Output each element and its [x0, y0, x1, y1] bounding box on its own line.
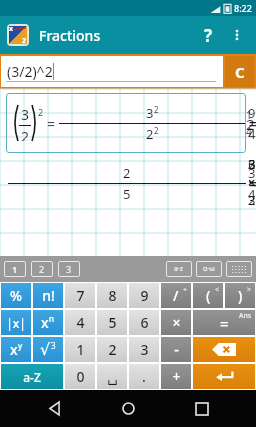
staticText: 4	[76, 313, 85, 332]
button[interactable]: x	[1, 337, 31, 362]
button[interactable]: (3/2)^2	[1, 56, 223, 87]
button[interactable]: )	[225, 283, 255, 308]
staticText: y	[18, 340, 23, 351]
button[interactable]: /	[161, 283, 191, 308]
staticText: x	[9, 24, 14, 34]
staticText: 2	[154, 125, 159, 136]
staticText: =	[220, 313, 229, 333]
button[interactable]: 3	[129, 337, 159, 362]
button[interactable]: Recent apps	[182, 390, 222, 427]
staticText: 7	[76, 286, 85, 305]
button[interactable]: -	[161, 337, 191, 362]
button[interactable]: 1	[65, 337, 95, 362]
button[interactable]: x	[33, 310, 63, 335]
staticText: ÷	[183, 285, 188, 295]
button[interactable]: 3	[58, 261, 80, 277]
staticText: =	[47, 114, 56, 133]
button[interactable]: 3	[6, 93, 246, 153]
staticText: 6	[140, 313, 149, 332]
button[interactable]: 6	[129, 310, 159, 335]
button[interactable]: a-Z	[1, 364, 63, 389]
staticText: 8:22	[234, 2, 252, 14]
button[interactable]: Enter	[193, 364, 255, 389]
staticText: 0	[76, 367, 85, 386]
button[interactable]: Keyboard	[226, 261, 252, 277]
staticText: 2	[38, 106, 44, 118]
button[interactable]: 8	[97, 283, 127, 308]
staticText: >	[247, 285, 252, 295]
staticText: 3	[21, 105, 30, 124]
staticText: +	[172, 367, 181, 386]
staticText: a·z	[174, 264, 184, 274]
button[interactable]: n!	[33, 283, 63, 308]
staticText: ⌴	[107, 364, 118, 389]
staticText: 2	[108, 340, 117, 359]
staticText: 8	[108, 286, 117, 305]
button[interactable]: |x|	[1, 310, 31, 335]
staticText: 3	[146, 104, 154, 122]
button[interactable]: 0	[65, 364, 95, 389]
staticText: Ans	[239, 311, 252, 321]
button[interactable]: 2	[4, 155, 246, 211]
staticText: |x|	[6, 315, 26, 331]
staticText: ?	[204, 24, 213, 47]
staticText: C	[235, 62, 245, 82]
button[interactable]: 5	[97, 310, 127, 335]
staticText: (	[206, 286, 211, 305]
button[interactable]: a·z	[166, 261, 192, 277]
staticText: ×	[172, 313, 181, 332]
staticText: 2	[154, 104, 159, 115]
button[interactable]: Backspace	[193, 337, 255, 362]
button[interactable]: Cube root	[33, 337, 63, 362]
staticText: 1	[76, 340, 85, 359]
button[interactable]: .	[129, 364, 159, 389]
staticText: 2	[146, 125, 154, 143]
staticText: a-Z	[23, 369, 41, 385]
staticText: 9	[140, 286, 149, 305]
staticText: 3	[140, 340, 149, 359]
button[interactable]: α·ω	[196, 261, 222, 277]
button[interactable]: Help	[195, 22, 221, 48]
staticText: 3	[66, 263, 72, 275]
staticText: 2	[39, 263, 45, 275]
button[interactable]: (	[193, 283, 223, 308]
staticText: <	[215, 285, 220, 295]
staticText: 2	[123, 164, 131, 182]
button[interactable]: 1	[4, 261, 26, 277]
staticText: 2	[22, 36, 27, 46]
staticText: x	[41, 313, 49, 332]
button[interactable]: Home	[108, 390, 148, 427]
staticText: 3	[51, 340, 56, 351]
staticText: (3/2)^2	[7, 62, 53, 81]
button[interactable]: Back	[34, 390, 74, 427]
staticText: 1	[12, 263, 18, 275]
button[interactable]: ⌴	[97, 364, 127, 389]
button[interactable]: App icon	[7, 24, 29, 46]
button[interactable]: ×	[161, 310, 191, 335]
staticText: n	[49, 313, 55, 324]
staticText: )	[238, 286, 243, 305]
button[interactable]: 7	[65, 283, 95, 308]
staticText: .	[142, 367, 146, 386]
button[interactable]: 9	[129, 283, 159, 308]
staticText: /	[173, 286, 179, 305]
button[interactable]: C	[225, 56, 254, 87]
button[interactable]: %	[1, 283, 31, 308]
button[interactable]: 2	[31, 261, 53, 277]
button[interactable]: +	[161, 364, 191, 389]
staticText: -	[174, 340, 179, 359]
staticText: %	[10, 286, 22, 305]
button[interactable]: 4	[65, 310, 95, 335]
staticText: α·ω	[203, 264, 215, 274]
button[interactable]: More options	[225, 23, 249, 47]
staticText: x	[10, 340, 18, 359]
staticText: 5	[123, 185, 131, 203]
staticText: Fractions	[39, 26, 101, 45]
staticText: n!	[42, 286, 55, 305]
button[interactable]: 2	[97, 337, 127, 362]
staticText: 2	[21, 127, 30, 141]
staticText: 5	[108, 313, 117, 332]
staticText: √	[40, 340, 51, 359]
button[interactable]: =	[193, 310, 255, 335]
